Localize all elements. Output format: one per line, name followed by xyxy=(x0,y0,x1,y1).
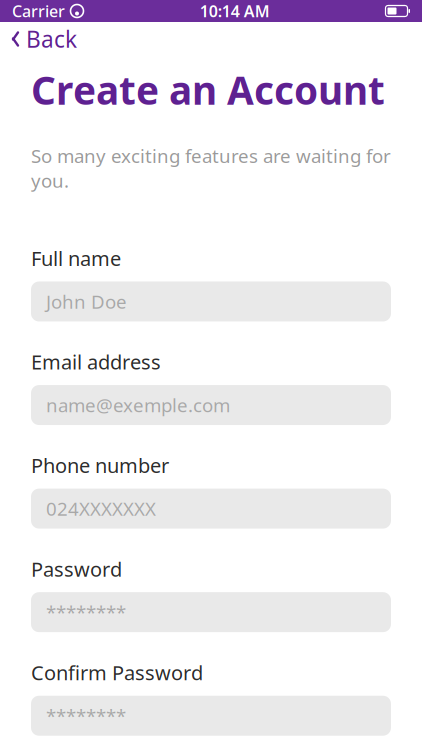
button[interactable]: John Doe xyxy=(31,281,391,321)
staticText: Create an Account xyxy=(31,64,385,115)
staticText: Full name xyxy=(31,245,121,271)
staticText: ******** xyxy=(46,703,126,728)
staticText: ******** xyxy=(46,600,126,625)
staticText: Carrier xyxy=(12,0,65,22)
staticText: John Doe xyxy=(46,289,127,314)
staticText: Phone number xyxy=(31,452,169,479)
staticText: name@exemple.com xyxy=(46,393,230,417)
staticText: Email address xyxy=(31,348,161,375)
button[interactable]: ******** xyxy=(31,696,391,736)
staticText: So many exciting features are waiting fo… xyxy=(31,143,391,193)
staticText: Back xyxy=(26,24,77,54)
button[interactable]: name@exemple.com xyxy=(31,385,391,425)
staticText: Password xyxy=(31,556,122,582)
button[interactable]: Back xyxy=(0,18,87,60)
staticText: Confirm Password xyxy=(31,659,203,686)
button[interactable]: ******** xyxy=(31,592,391,632)
staticText: 10:14 AM xyxy=(200,0,270,22)
button[interactable]: 024XXXXXXX xyxy=(31,489,391,529)
staticText: 024XXXXXXX xyxy=(46,496,156,521)
